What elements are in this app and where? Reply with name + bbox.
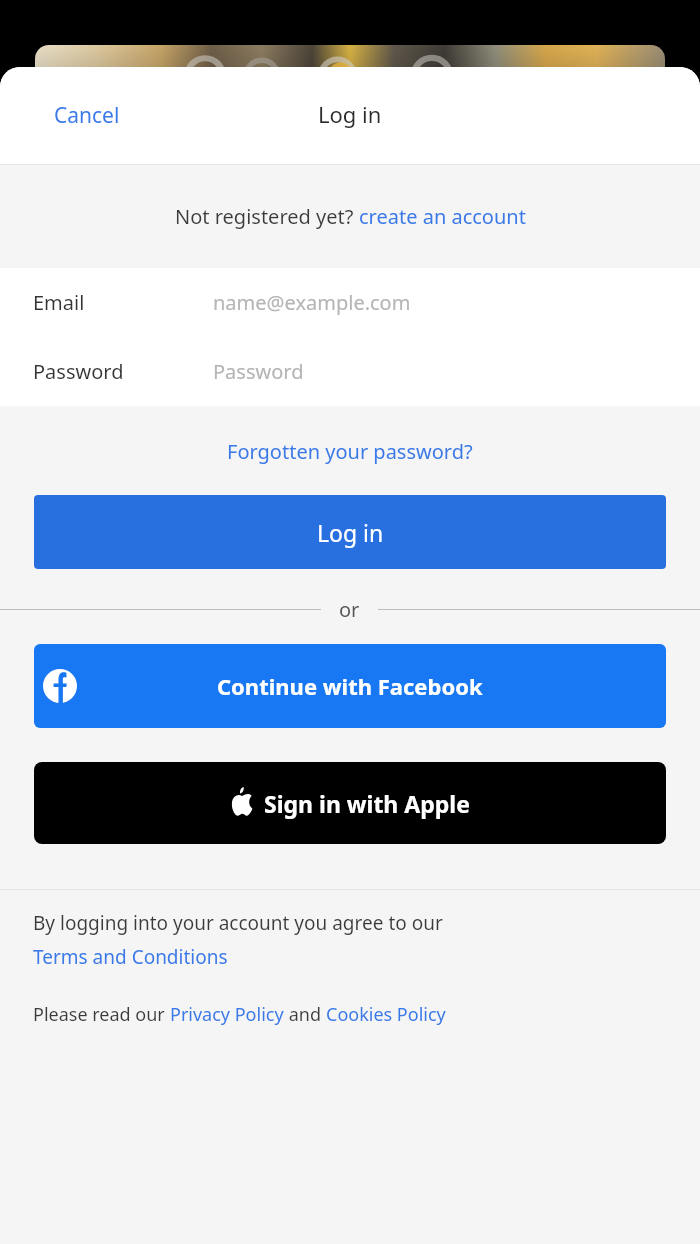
staticText: create an account <box>359 203 526 230</box>
other: Apple <box>230 787 254 816</box>
staticText: Terms and Conditions <box>33 944 228 970</box>
button[interactable]: Log in <box>34 495 666 569</box>
staticText: Email <box>33 289 85 316</box>
staticText: Cookies Policy <box>326 1002 446 1027</box>
staticText: Cancel <box>54 101 120 130</box>
staticText: Continue with Facebook <box>217 671 483 701</box>
staticText: Log in <box>317 517 384 548</box>
other: Facebook <box>43 669 77 703</box>
button[interactable]: Apple <box>34 762 666 844</box>
staticText: name@example.com <box>213 289 411 316</box>
staticText: By logging into your account you agree t… <box>33 910 443 936</box>
staticText: Password <box>33 358 124 385</box>
staticText: and <box>284 1002 326 1027</box>
staticText: Log in <box>318 99 382 129</box>
button[interactable]: Forgotten your password? <box>219 430 481 473</box>
staticText: Not registered yet? <box>175 203 359 230</box>
staticText: or <box>339 596 360 623</box>
staticText: Forgotten your password? <box>227 438 473 465</box>
button[interactable]: Email <box>0 268 700 337</box>
button[interactable]: Privacy Policy <box>170 1002 284 1027</box>
staticText: Password <box>213 358 304 385</box>
button[interactable]: Cancel <box>0 89 144 142</box>
button[interactable]: Cookies Policy <box>326 1002 446 1027</box>
staticText: Privacy Policy <box>170 1002 284 1027</box>
staticText: Please read our <box>33 1002 170 1027</box>
button[interactable]: Terms and Conditions <box>33 944 228 970</box>
button[interactable]: create an account <box>359 203 526 230</box>
staticText: Sign in with Apple <box>264 788 470 819</box>
button[interactable]: Password <box>0 337 700 406</box>
button[interactable]: Facebook <box>34 644 666 728</box>
